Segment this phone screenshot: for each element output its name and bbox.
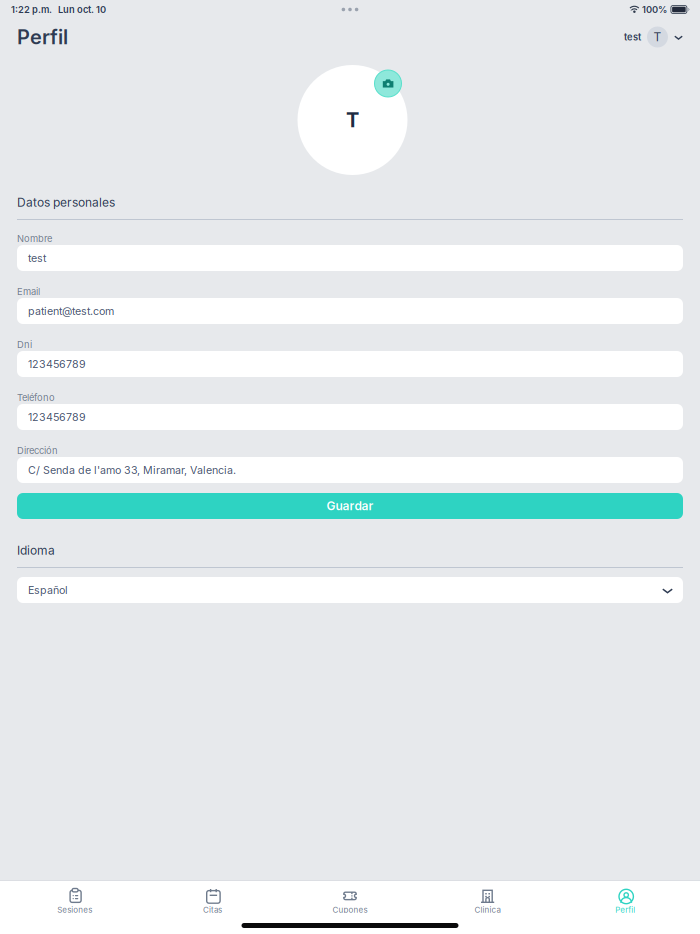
staticText: Dirección (17, 445, 58, 456)
button[interactable]: Cupones (281, 888, 419, 915)
staticText: test (624, 31, 641, 43)
staticText: Español (28, 583, 68, 596)
button[interactable]: Clinica (419, 888, 556, 915)
staticText: Nombre (17, 233, 52, 244)
button[interactable]: Guardar (17, 493, 683, 519)
staticText: Email (17, 286, 40, 297)
staticText: Dni (17, 339, 32, 350)
staticText: T (346, 108, 359, 132)
button[interactable]: Español (17, 577, 683, 603)
button[interactable]: Citas (144, 888, 281, 915)
staticText: 100% (642, 4, 667, 15)
staticText: Datos personales (17, 195, 115, 209)
staticText: 1:22 p.m. (11, 4, 52, 15)
staticText: Citas (203, 905, 222, 915)
staticText: Perfil (17, 25, 68, 49)
staticText: 123456789 (28, 410, 86, 423)
staticText: T (653, 30, 661, 44)
staticText: Cupones (332, 905, 367, 915)
staticText: patient@test.com (28, 304, 114, 317)
staticText: Clinica (475, 905, 501, 915)
staticText: test (28, 251, 46, 264)
staticText: Idioma (17, 543, 55, 557)
staticText: Guardar (326, 499, 373, 513)
staticText: Sesiones (57, 905, 92, 915)
button[interactable]: Change profile photo (380, 65, 407, 92)
staticText: Perfil (615, 905, 635, 915)
button[interactable]: Sesiones (6, 888, 144, 915)
button[interactable]: Perfil (556, 888, 694, 915)
staticText: C/ Senda de l'amo 33, Miramar, Valencia. (28, 463, 236, 476)
staticText: 123456789 (28, 357, 86, 370)
staticText: Teléfono (17, 392, 55, 403)
button[interactable]: test (624, 26, 683, 47)
staticText: Lun oct. 10 (58, 4, 106, 15)
